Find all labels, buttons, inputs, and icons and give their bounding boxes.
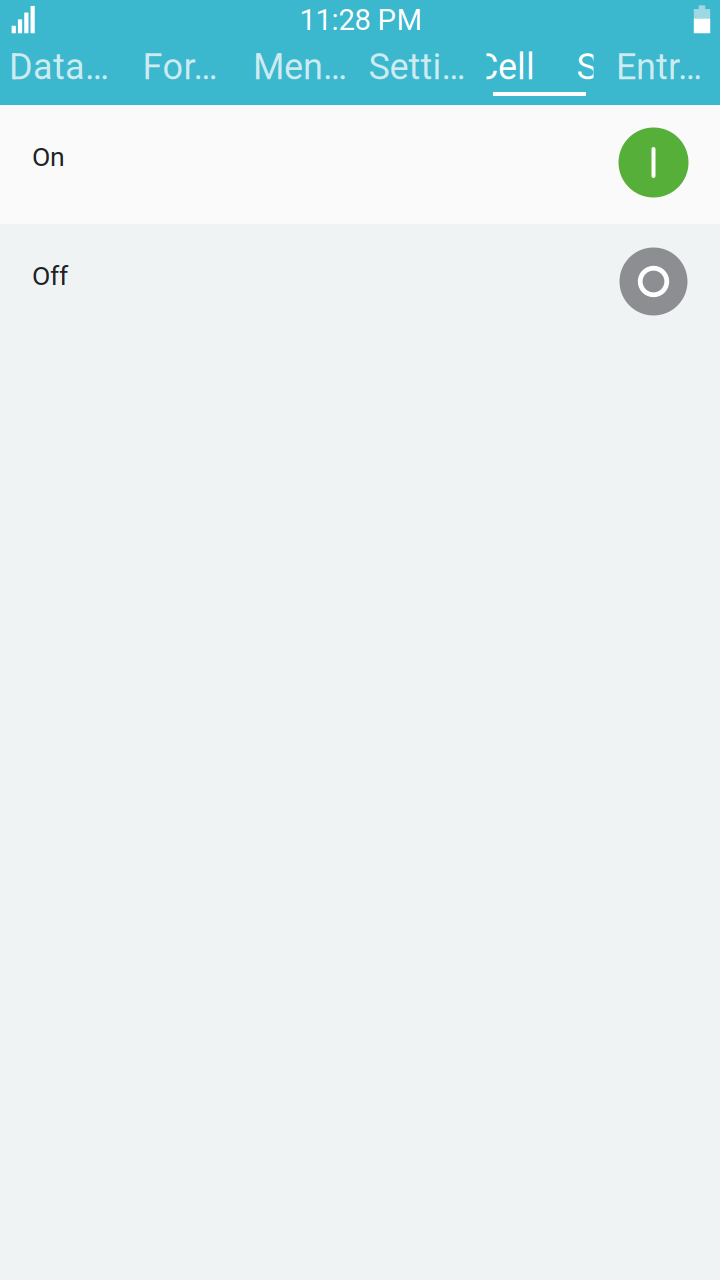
button[interactable]: Turn off (619, 247, 687, 315)
staticText: S (576, 46, 597, 88)
button[interactable]: Men… (253, 36, 347, 98)
button[interactable]: Entr… (616, 36, 702, 98)
button[interactable]: Turn on (618, 127, 688, 197)
staticText: On (32, 141, 65, 173)
button[interactable]: Setti… (368, 36, 465, 98)
staticText: Setti… (368, 46, 465, 88)
staticText: Data… (9, 46, 109, 88)
staticText: For… (142, 46, 217, 88)
button[interactable]: On (0, 105, 720, 224)
staticText: Off (32, 260, 68, 292)
staticText: Cell (475, 46, 535, 88)
button[interactable]: For… (142, 36, 217, 98)
button[interactable]: Off (0, 224, 720, 343)
button[interactable]: Data… (9, 36, 109, 98)
button[interactable]: S (576, 36, 597, 98)
staticText: Men… (253, 46, 347, 88)
staticText: Entr… (616, 46, 702, 88)
staticText: 11:28 PM (299, 3, 422, 37)
button[interactable]: Cell (475, 36, 535, 98)
